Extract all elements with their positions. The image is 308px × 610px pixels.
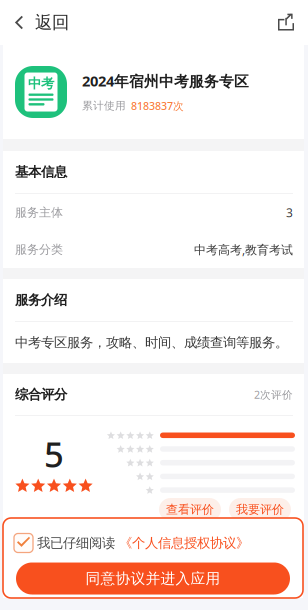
button[interactable]: 同意协议 [14,533,33,552]
button[interactable]: 我要评价 [229,498,291,521]
staticText: 我已仔细阅读 [37,535,115,551]
staticText: 服务主体 [15,205,63,220]
staticText: 5 [44,431,64,477]
staticText: 中考 [28,75,54,92]
staticText: 我要评价 [236,502,284,517]
staticText: 综合评分 [15,386,67,403]
button[interactable]: 查看评价 [159,498,221,521]
staticText: 服务介绍 [15,292,67,308]
button[interactable]: 返回 [0,0,79,45]
staticText: 《个人信息授权协议》 [119,535,249,551]
staticText: 2次评价 [254,387,293,402]
staticText: 返回 [35,12,69,33]
staticText: 累计使用 [82,99,126,112]
staticText: 服务分类 [15,242,63,257]
button[interactable]: 同意协议并进入应用 [16,562,290,594]
staticText: 8183837次 [131,99,184,113]
button[interactable]: 《个人信息授权协议》 [119,535,249,551]
staticText: 3 [286,204,293,220]
button[interactable]: 分享 [268,0,308,45]
staticText: 基本信息 [15,164,67,180]
staticText: 同意协议并进入应用 [85,569,220,587]
staticText: 查看评价 [166,502,214,517]
staticText: 2024年宿州中考服务专区 [82,71,249,91]
staticText: 中考专区服务，攻略、时间、成绩查询等服务。 [15,334,288,351]
staticText: 中考高考,教育考试 [194,241,293,257]
